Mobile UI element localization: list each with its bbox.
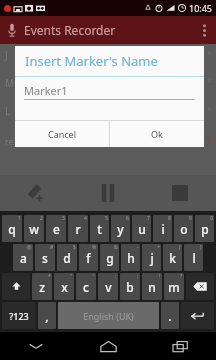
- button[interactable]: t: [90, 215, 109, 242]
- button[interactable]: .: [161, 302, 179, 329]
- button[interactable]: s: [35, 244, 55, 271]
- staticText: v: [105, 279, 112, 295]
- staticText: 4: [84, 215, 87, 222]
- staticText: 3: [62, 215, 65, 222]
- staticText: 07: [197, 132, 212, 150]
- button[interactable]: z: [32, 273, 52, 300]
- button[interactable]: x: [54, 273, 74, 300]
- staticText: L: [5, 104, 11, 118]
- staticText: p: [201, 221, 209, 237]
- button[interactable]: k: [163, 244, 182, 271]
- button[interactable]: Home: [72, 332, 144, 360]
- staticText: t: [97, 221, 102, 237]
- staticText: d: [63, 250, 71, 266]
- staticText: %: [92, 244, 97, 251]
- staticText: @: [27, 244, 32, 251]
- button[interactable]: q: [2, 215, 22, 242]
- staticText: +: [157, 244, 160, 251]
- staticText: z: [39, 279, 45, 295]
- staticText: 5: [105, 215, 108, 222]
- staticText: Events Recorder: [24, 22, 116, 38]
- staticText: 6: [126, 215, 129, 222]
- staticText: g: [106, 250, 114, 266]
- button[interactable]: l: [184, 244, 203, 271]
- staticText: u: [138, 221, 146, 237]
- staticText: ?123: [9, 310, 29, 322]
- button[interactable]: r: [68, 215, 88, 242]
- button[interactable]: w: [24, 215, 44, 242]
- button[interactable]: Hide keyboard: [0, 332, 72, 360]
- staticText: b: [126, 279, 134, 295]
- staticText: Ok: [151, 128, 163, 140]
- staticText: ': [93, 273, 95, 280]
- staticText: ): [200, 244, 202, 251]
- button[interactable]: ?123: [2, 302, 36, 329]
- button[interactable]: Enter: [181, 302, 214, 329]
- button[interactable]: c: [76, 273, 96, 300]
- staticText: k: [208, 104, 212, 114]
- staticText: (: [179, 244, 181, 251]
- staticText: !: [159, 273, 161, 280]
- button[interactable]: Stop: [144, 175, 216, 211]
- staticText: ?: [180, 273, 183, 280]
- button[interactable]: Backspace: [186, 273, 214, 300]
- staticText: n: [148, 279, 156, 295]
- staticText: &: [114, 244, 118, 251]
- button[interactable]: Shift: [2, 273, 30, 300]
- button[interactable]: More options: [192, 18, 216, 42]
- button[interactable]: Recent apps: [144, 332, 216, 360]
- staticText: i: [161, 221, 165, 237]
- button[interactable]: Ok: [110, 121, 204, 147]
- button[interactable]: f: [79, 244, 98, 271]
- staticText: :: [115, 273, 117, 280]
- staticText: Insert Marker's Name: [25, 52, 158, 70]
- button[interactable]: u: [132, 215, 151, 242]
- staticText: ;: [137, 273, 139, 280]
- button[interactable]: English (UK): [58, 302, 159, 329]
- staticText: q: [8, 221, 16, 237]
- button[interactable]: j: [142, 244, 161, 271]
- staticText: $: [73, 244, 76, 251]
- staticText: j: [150, 250, 154, 266]
- button[interactable]: Cancel: [15, 121, 109, 147]
- button[interactable]: b: [120, 273, 140, 300]
- button[interactable]: h: [121, 244, 140, 271]
- staticText: x: [61, 279, 68, 295]
- staticText: r: [75, 221, 81, 237]
- staticText: *: [48, 273, 51, 280]
- staticText: -: [137, 244, 139, 251]
- staticText: w: [29, 221, 39, 237]
- staticText: c: [83, 279, 89, 295]
- staticText: re: [5, 135, 14, 147]
- staticText: k: [169, 250, 176, 266]
- button[interactable]: Pause: [72, 175, 144, 211]
- button[interactable]: v: [98, 273, 118, 300]
- staticText: ,: [45, 308, 49, 324]
- staticText: k: [208, 48, 212, 58]
- staticText: a: [20, 250, 27, 266]
- staticText: Cancel: [48, 128, 77, 140]
- staticText: m: [168, 279, 180, 295]
- button[interactable]: y: [111, 215, 130, 242]
- staticText: k: [208, 76, 212, 86]
- staticText: f: [86, 250, 91, 266]
- button[interactable]: g: [100, 244, 119, 271]
- staticText: #: [50, 244, 54, 251]
- button[interactable]: e: [46, 215, 66, 242]
- button[interactable]: Marker1: [24, 82, 195, 99]
- staticText: 1: [18, 215, 21, 222]
- staticText: y: [117, 221, 124, 237]
- staticText: e: [53, 221, 60, 237]
- button[interactable]: m: [164, 273, 184, 300]
- button[interactable]: a: [13, 244, 33, 271]
- button[interactable]: i: [153, 215, 172, 242]
- staticText: 8: [168, 215, 171, 222]
- button[interactable]: d: [57, 244, 77, 271]
- staticText: s: [42, 250, 48, 266]
- button[interactable]: ,: [38, 302, 56, 329]
- button[interactable]: n: [142, 273, 162, 300]
- button[interactable]: p: [195, 215, 214, 242]
- staticText: English (UK): [83, 310, 134, 322]
- button[interactable]: o: [174, 215, 193, 242]
- button[interactable]: Add marker: [0, 175, 72, 211]
